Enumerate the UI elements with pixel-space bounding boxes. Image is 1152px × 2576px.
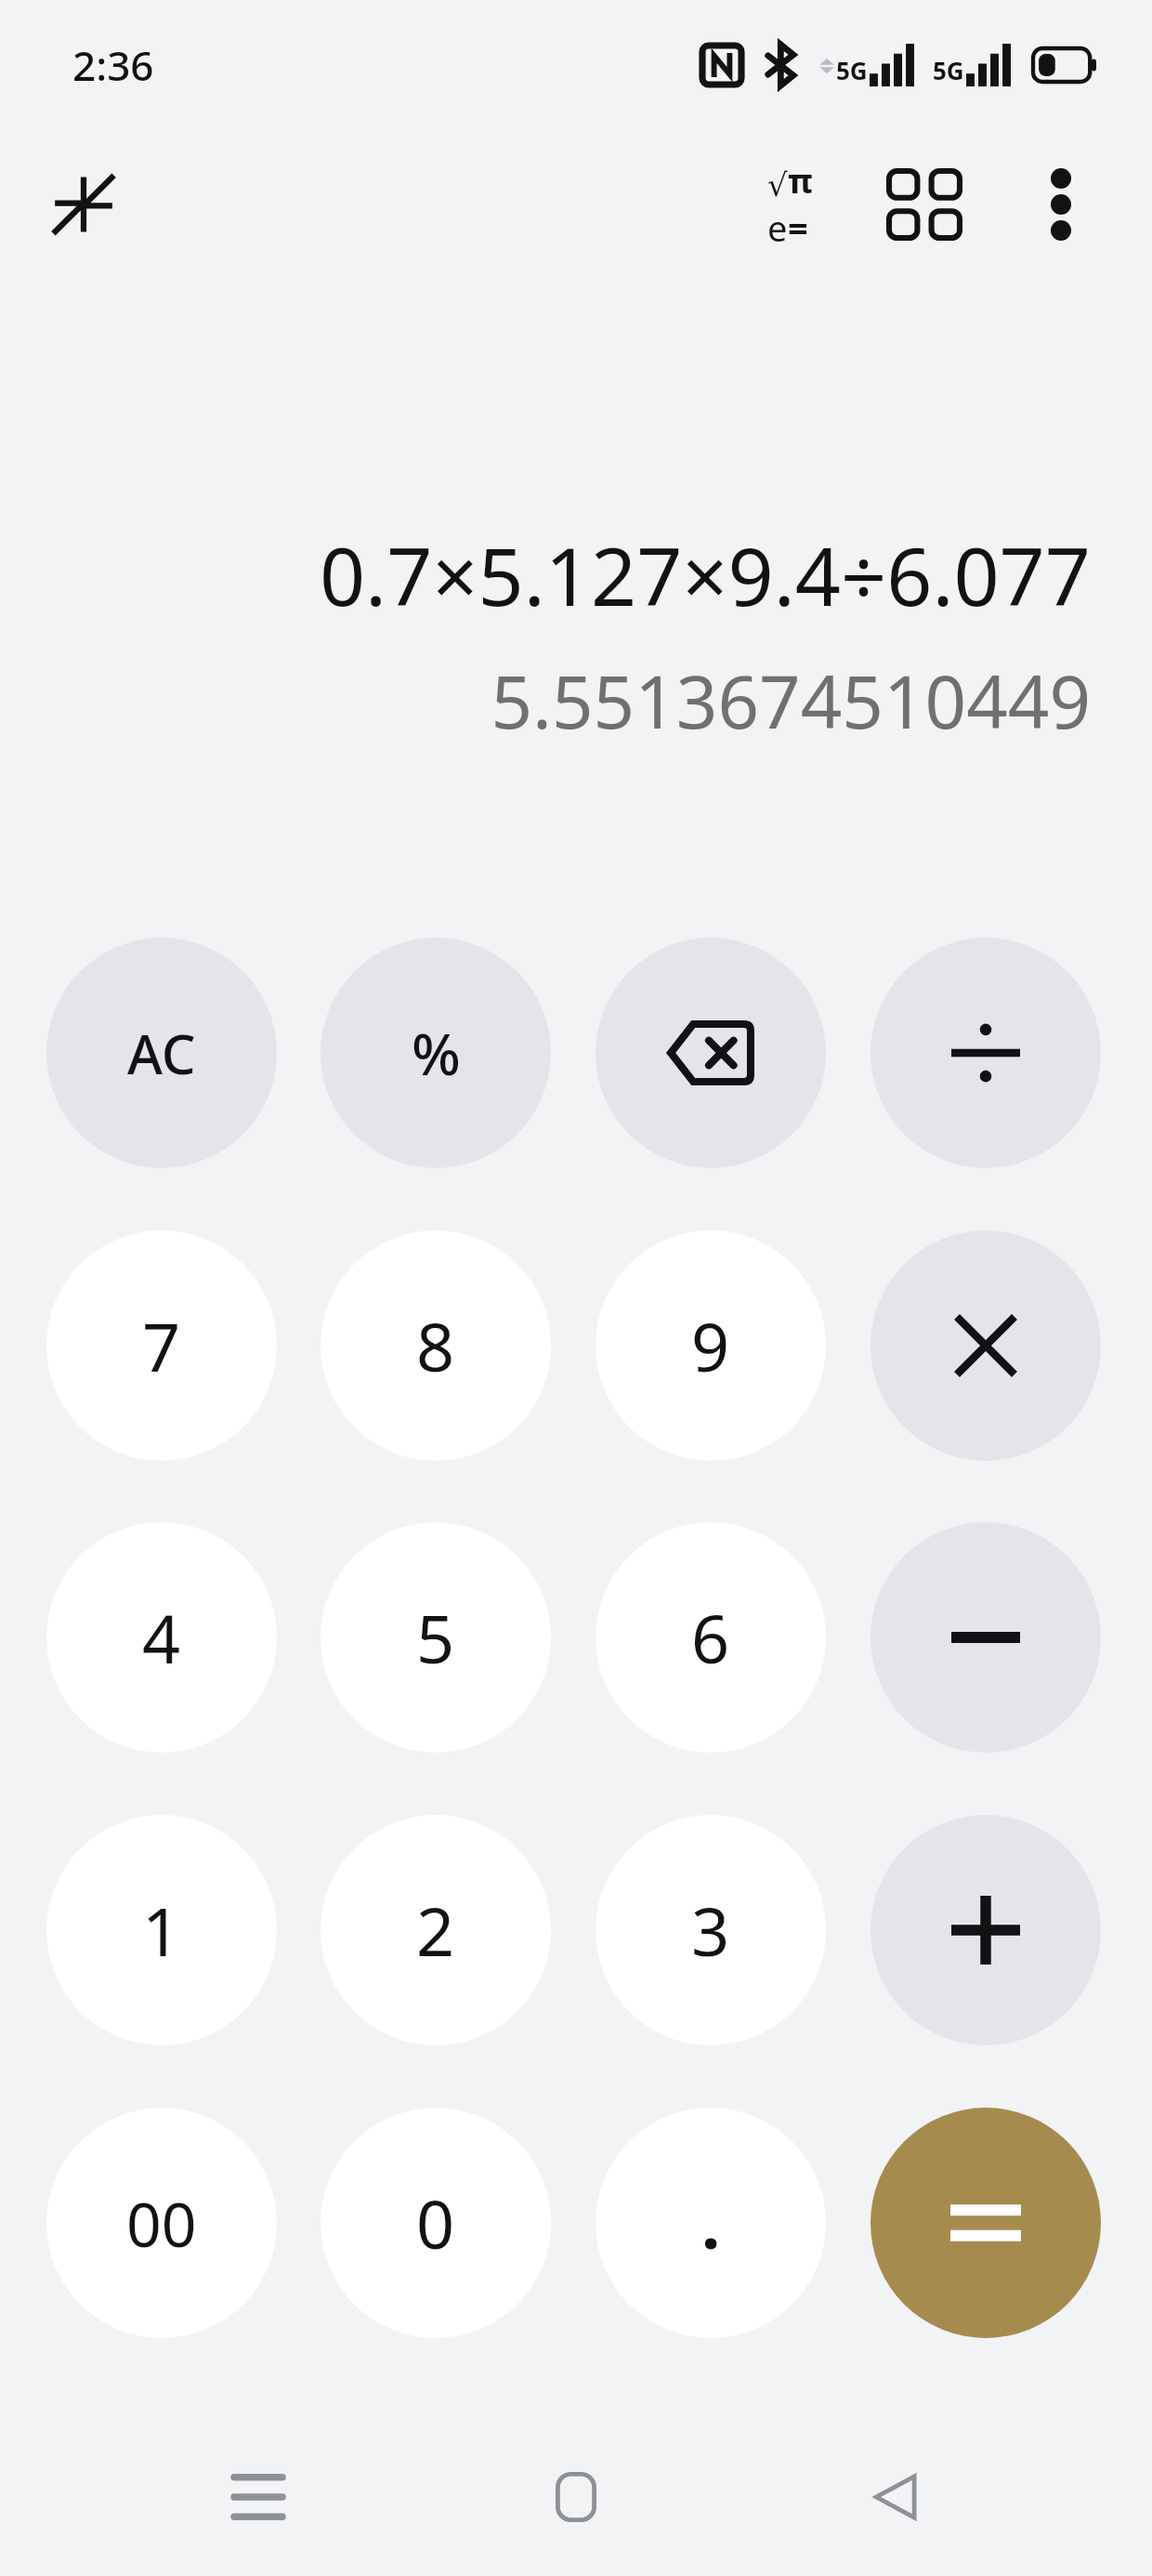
staticText: 5G	[933, 54, 964, 86]
button[interactable]: Recents	[198, 2437, 319, 2557]
staticText: 00	[126, 2181, 197, 2265]
staticText: e	[767, 204, 788, 252]
staticText: 6	[691, 1592, 730, 1683]
button[interactable]: 7	[46, 1230, 277, 1461]
button[interactable]: 2	[321, 1815, 551, 2045]
staticText: 0	[416, 2177, 455, 2268]
button[interactable]: AC	[46, 938, 277, 1168]
button[interactable]: %	[321, 938, 551, 1168]
button[interactable]: Collapse	[28, 149, 139, 260]
staticText: 1	[142, 1885, 181, 1976]
button[interactable]: More options	[1005, 149, 1117, 260]
staticText: 9	[691, 1300, 730, 1391]
button[interactable]: 0	[321, 2108, 551, 2338]
staticText: π	[788, 158, 813, 204]
button[interactable]: 4	[46, 1522, 277, 1753]
button[interactable]: Divide	[871, 938, 1101, 1168]
staticText: AC	[127, 1017, 196, 1090]
button[interactable]: 3	[596, 1815, 826, 2045]
button[interactable]: Scientific functions	[734, 149, 845, 260]
staticText: .	[701, 2177, 721, 2268]
button[interactable]: 00	[46, 2108, 277, 2338]
staticText: 8	[416, 1300, 455, 1391]
button[interactable]: Minus	[871, 1522, 1101, 1753]
button[interactable]: History	[869, 149, 980, 260]
button[interactable]: 1	[46, 1815, 277, 2045]
button[interactable]: 6	[596, 1522, 826, 1753]
button[interactable]: 8	[321, 1230, 551, 1461]
staticText: %	[412, 1014, 461, 1092]
button[interactable]: Back	[834, 2437, 955, 2557]
button[interactable]: Multiply	[871, 1230, 1101, 1461]
staticText: 5G	[836, 54, 868, 86]
staticText: 5	[416, 1592, 455, 1683]
staticText: 2:36	[72, 37, 154, 93]
staticText: √	[767, 166, 788, 204]
button[interactable]: Backspace	[596, 938, 826, 1168]
staticText: 0.7×5.127×9.4÷6.077	[319, 520, 1091, 629]
staticText: =	[788, 204, 808, 252]
button[interactable]: Home	[516, 2437, 636, 2557]
staticText: 7	[142, 1300, 181, 1391]
button[interactable]: 5	[321, 1522, 551, 1753]
staticText: 5.5513674510449	[491, 651, 1091, 750]
button[interactable]: Equals	[871, 2108, 1101, 2338]
button[interactable]: .	[596, 2108, 826, 2338]
staticText: 2	[416, 1885, 455, 1976]
button[interactable]: Plus	[871, 1815, 1101, 2045]
button[interactable]: 9	[596, 1230, 826, 1461]
staticText: 3	[691, 1885, 730, 1976]
staticText: 4	[142, 1592, 181, 1683]
